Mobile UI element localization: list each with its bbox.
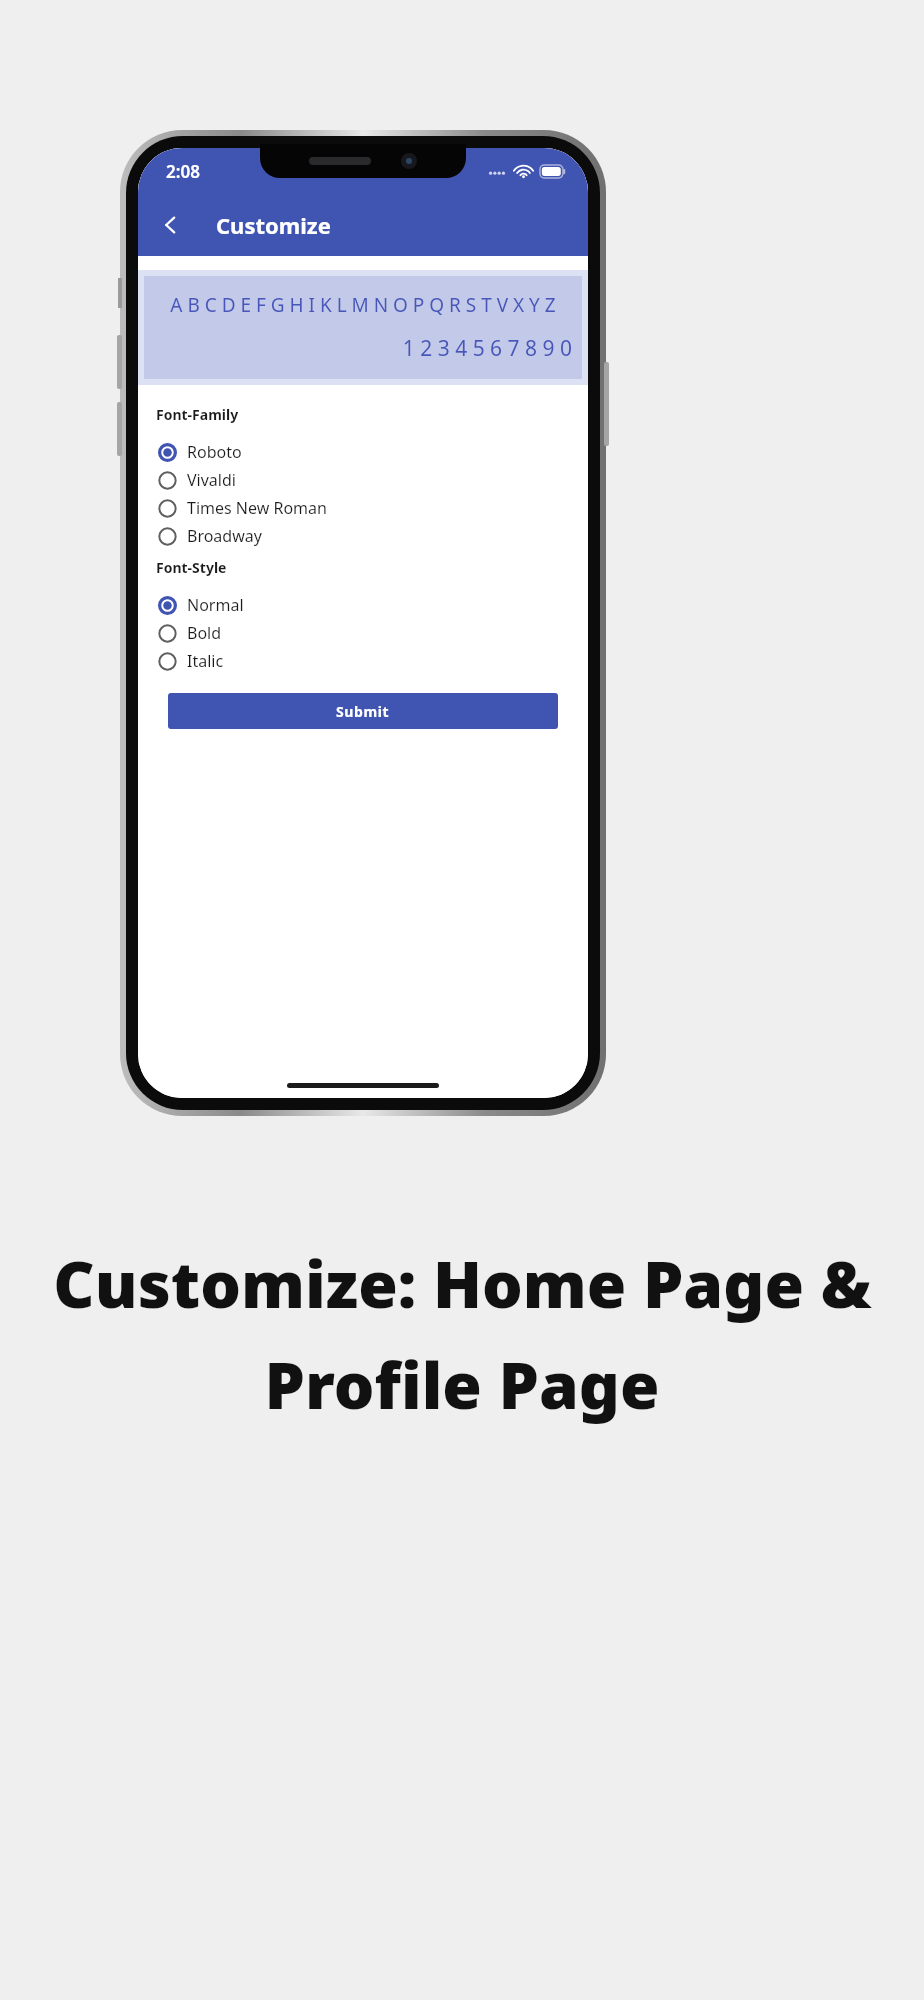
button[interactable]: Broadway [152, 522, 574, 550]
button[interactable]: Italic [152, 647, 574, 675]
staticText: 1 2 3 4 5 6 7 8 9 0 [154, 334, 572, 363]
staticText: Submit [336, 702, 390, 721]
staticText: Italic [187, 650, 224, 672]
button[interactable]: Submit [168, 693, 558, 729]
staticText: Bold [187, 622, 222, 644]
staticText: Broadway [187, 525, 262, 547]
staticText: A B C D E F G H I K L M N O P Q R S T V … [154, 292, 572, 318]
staticText: Customize: Home Page & [53, 1240, 872, 1327]
button[interactable]: Roboto [152, 438, 574, 466]
staticText: Normal [187, 594, 244, 616]
staticText: Vivaldi [187, 469, 236, 491]
staticText: Roboto [187, 441, 242, 463]
staticText: Times New Roman [187, 497, 327, 519]
button[interactable]: Back [148, 202, 194, 248]
staticText: Customize [216, 210, 331, 240]
staticText: Font-Style [156, 558, 227, 577]
button[interactable]: Normal [152, 591, 574, 619]
button[interactable]: Bold [152, 619, 574, 647]
staticText: Font-Family [156, 405, 239, 424]
staticText: Profile Page [264, 1341, 660, 1428]
staticText: 2:08 [166, 160, 200, 183]
button[interactable]: Vivaldi [152, 466, 574, 494]
button[interactable]: Times New Roman [152, 494, 574, 522]
